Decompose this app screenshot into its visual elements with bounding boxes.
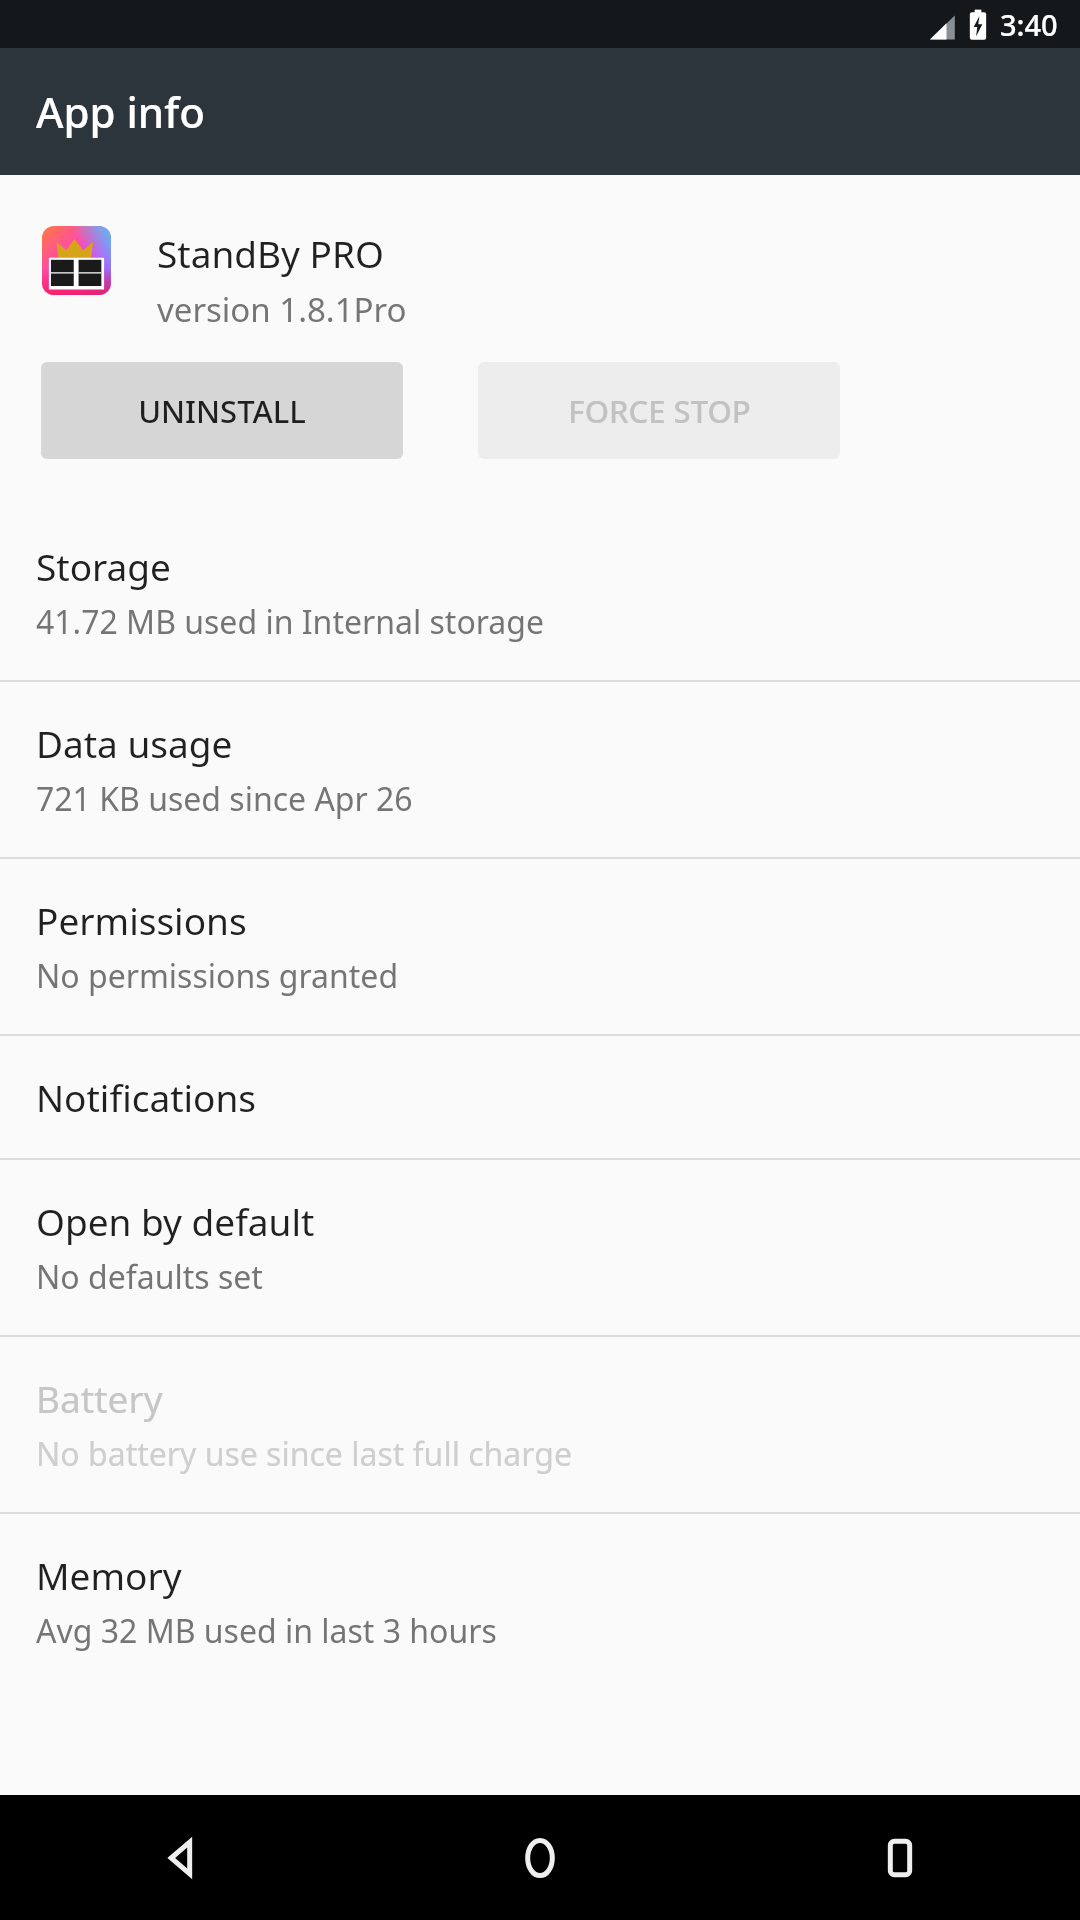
staticText: 41.72 MB used in Internal storage (36, 600, 545, 644)
staticText: Notifications (36, 1072, 257, 1122)
staticText: No permissions granted (36, 954, 399, 998)
staticText: Storage (36, 541, 171, 591)
staticText: No battery use since last full charge (36, 1432, 572, 1476)
staticText: UNINSTALL (138, 390, 306, 432)
button[interactable]: Permissions (0, 859, 1080, 1034)
button[interactable]: Home (360, 1795, 720, 1920)
button[interactable]: Recent apps (720, 1795, 1080, 1920)
staticText: No defaults set (36, 1255, 263, 1299)
staticText: App info (36, 83, 205, 140)
staticText: Permissions (36, 895, 247, 945)
staticText: FORCE STOP (568, 390, 751, 432)
button[interactable]: FORCE STOP (478, 362, 840, 459)
staticText: Open by default (36, 1196, 315, 1246)
staticText: Avg 32 MB used in last 3 hours (36, 1609, 497, 1653)
staticText: version 1.8.1Pro (157, 287, 407, 332)
button[interactable]: UNINSTALL (41, 362, 403, 459)
button[interactable]: Storage (0, 505, 1080, 680)
button[interactable]: Open by default (0, 1160, 1080, 1335)
staticText: Memory (36, 1550, 182, 1600)
staticText: Data usage (36, 718, 233, 768)
staticText: 721 KB used since Apr 26 (36, 777, 413, 821)
button[interactable]: Battery (0, 1337, 1080, 1512)
staticText: 3:40 (1000, 5, 1058, 44)
button[interactable]: Back (0, 1795, 360, 1920)
button[interactable]: Notifications (0, 1036, 1080, 1158)
staticText: Battery (36, 1373, 163, 1423)
staticText: StandBy PRO (157, 228, 384, 278)
button[interactable]: Memory (0, 1514, 1080, 1689)
button[interactable]: Data usage (0, 682, 1080, 857)
